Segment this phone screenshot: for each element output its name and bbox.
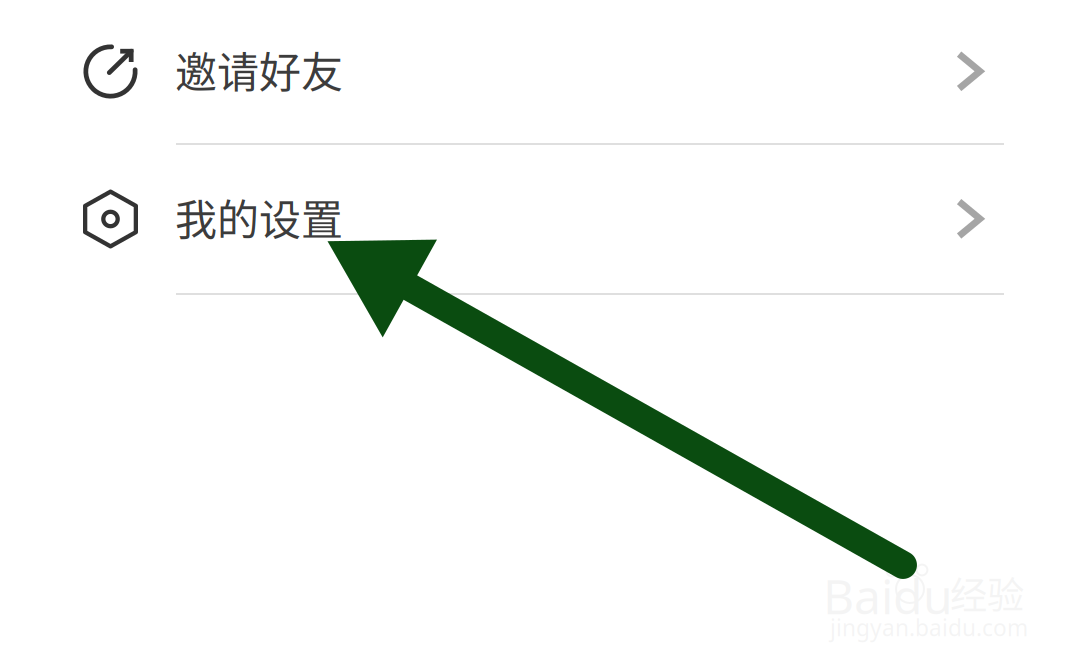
staticText: 我的设置 bbox=[175, 187, 343, 247]
staticText: 邀请好友 bbox=[175, 39, 343, 100]
staticText: 经验 bbox=[950, 566, 1024, 620]
staticText: jingyan.baidu.com bbox=[830, 612, 1028, 643]
staticText: Baidu bbox=[823, 563, 953, 628]
button[interactable]: 邀请好友 bbox=[0, 0, 1079, 143]
button[interactable]: 我的设置 bbox=[0, 145, 1079, 293]
